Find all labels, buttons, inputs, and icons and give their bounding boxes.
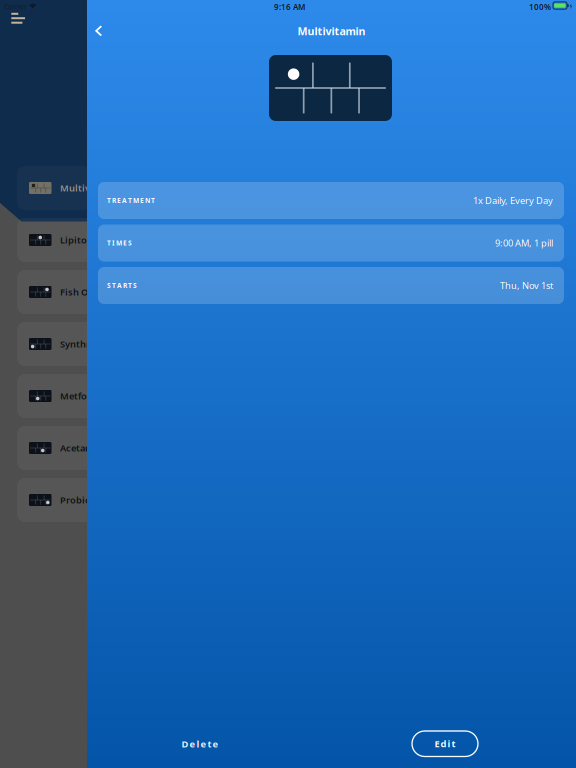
staticText: E d i t <box>434 738 455 750</box>
button[interactable]: Fish Oil <box>17 270 167 314</box>
staticText: 100% <box>529 2 551 12</box>
button[interactable]: Lipitor <box>17 218 167 262</box>
staticText: 1x Daily, Every Day <box>473 194 553 207</box>
staticText: S T A R T S <box>107 281 137 290</box>
staticText: Synthroid <box>60 338 105 350</box>
staticText: Lipitor <box>60 234 91 246</box>
staticText: T R E A T M E N T <box>107 196 155 205</box>
staticText: 9:00 AM, 1 pill <box>495 237 553 249</box>
button[interactable]: S T A R T S <box>98 267 564 304</box>
button[interactable]: Back <box>83 16 113 46</box>
staticText: Multivitamin <box>60 182 120 194</box>
button[interactable]: T R E A T M E N T <box>98 182 564 219</box>
staticText: 9:16 AM <box>274 2 305 12</box>
staticText: Metformin <box>60 390 109 402</box>
button[interactable]: Menu <box>11 13 35 33</box>
staticText: Thu, Nov 1st <box>500 279 553 292</box>
staticText: D e l e t e <box>181 738 218 750</box>
button[interactable]: Probiotic <box>17 478 167 522</box>
button[interactable]: Metformin <box>17 374 167 418</box>
staticText: Multivitamin <box>297 24 365 38</box>
staticText: Carrier <box>4 2 27 11</box>
button[interactable]: D e l e t e <box>152 731 248 757</box>
button[interactable]: Multivitamin <box>17 166 167 210</box>
button[interactable]: E d i t <box>412 731 478 756</box>
staticText: Fish Oil <box>60 286 94 298</box>
button[interactable]: Acetaminophen <box>17 426 167 470</box>
staticText: Acetaminophen <box>60 442 132 454</box>
staticText: T I M E S <box>107 239 132 247</box>
button[interactable]: Synthroid <box>17 322 167 366</box>
button[interactable]: T I M E S <box>98 224 564 261</box>
staticText: Probiotic <box>60 494 103 506</box>
